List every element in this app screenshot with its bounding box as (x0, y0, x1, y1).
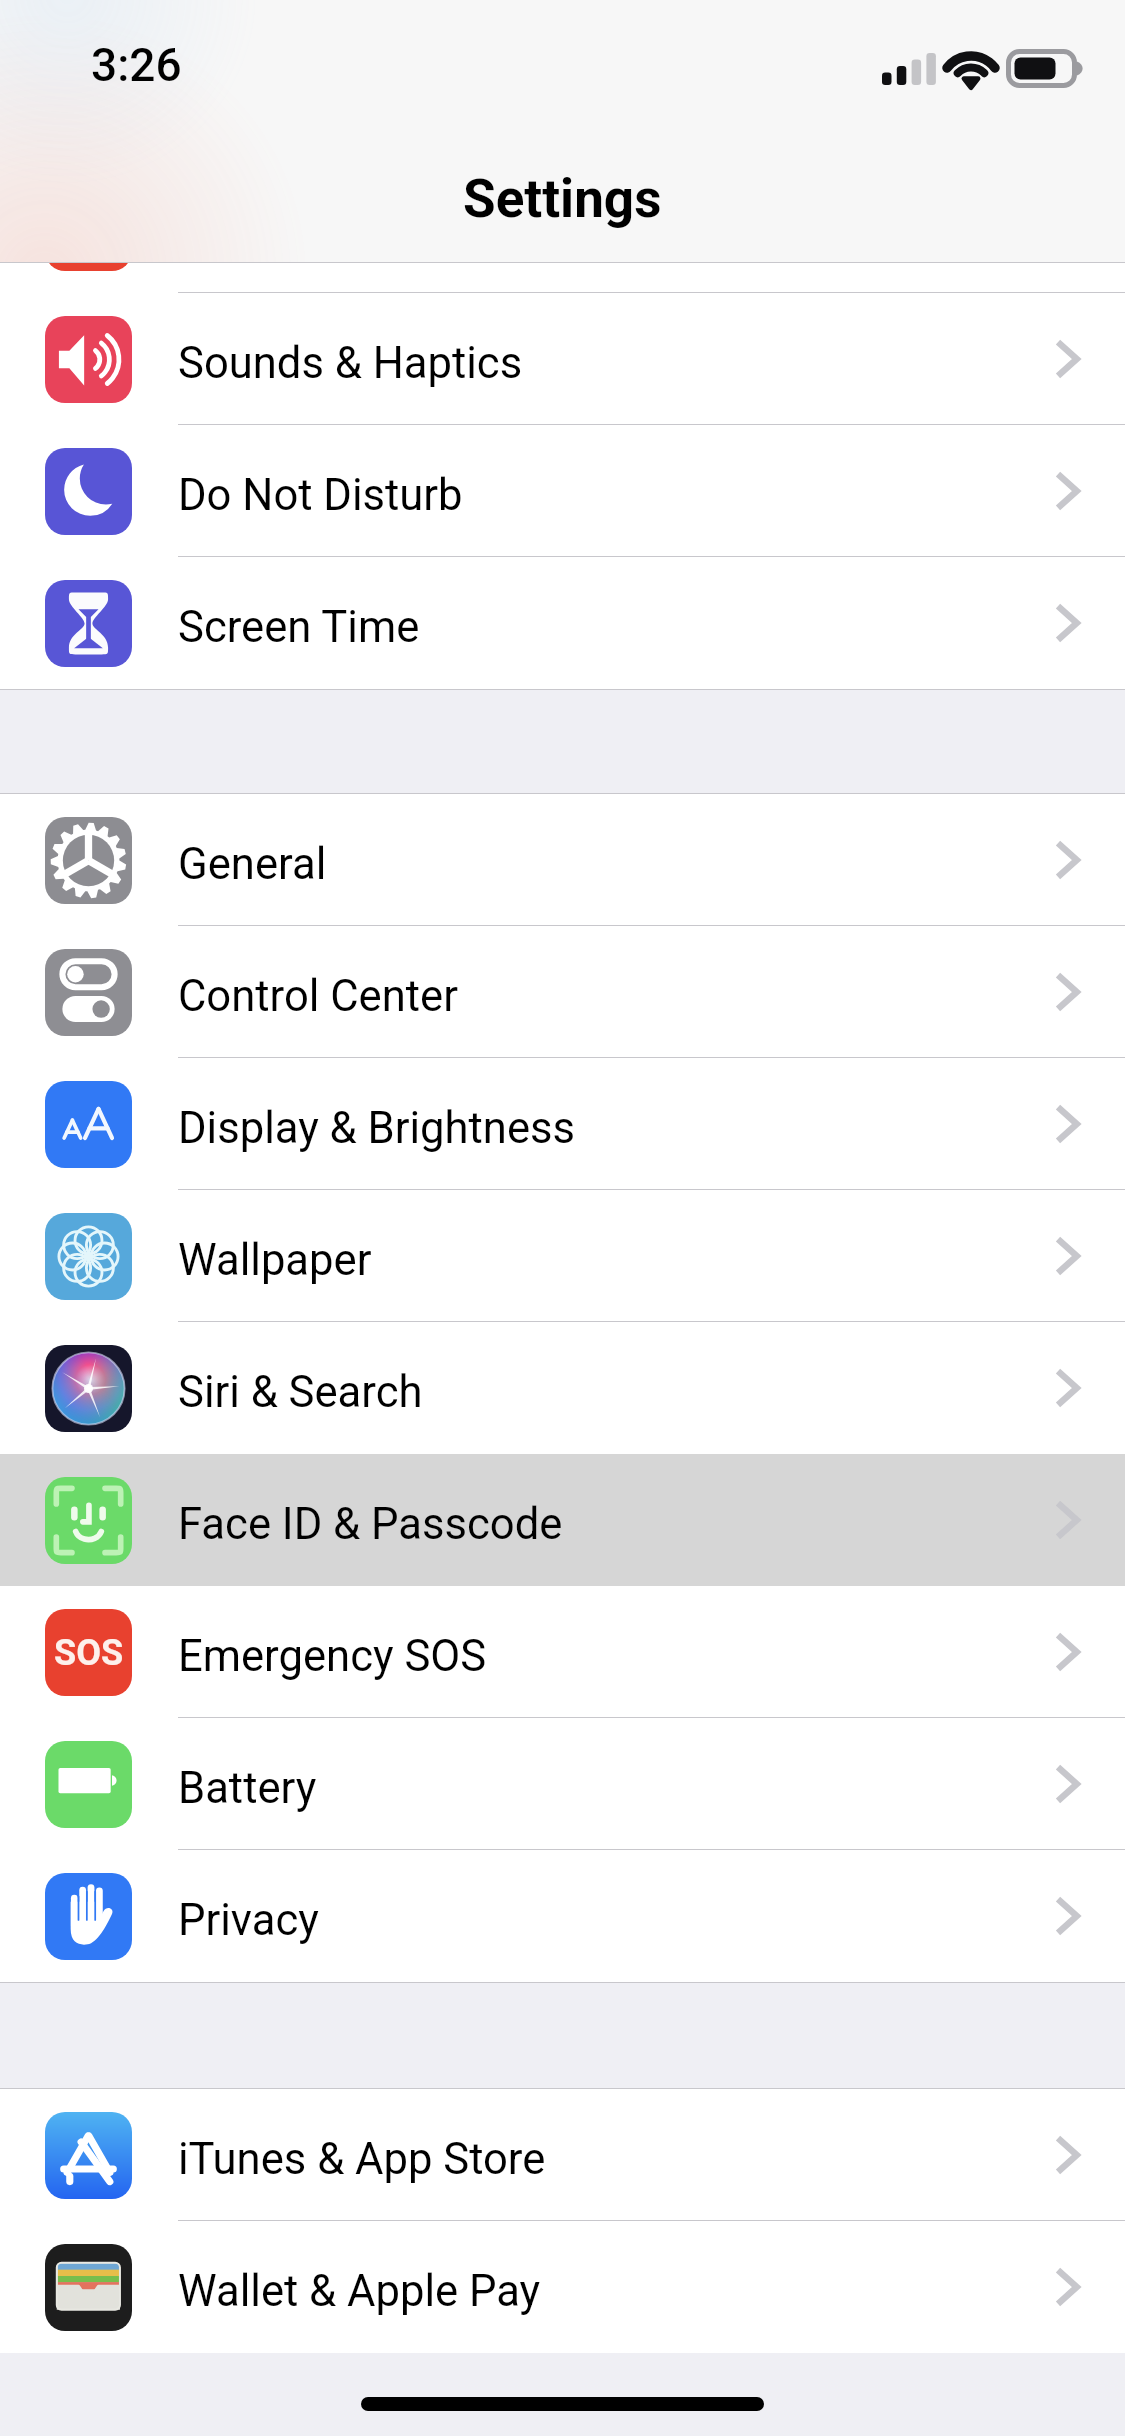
button[interactable]: Do Not Disturb (0, 425, 1125, 557)
button[interactable]: Display & Brightness (0, 1058, 1125, 1190)
staticText: Screen Time (178, 602, 420, 653)
staticText: Notifications (178, 206, 426, 257)
button[interactable]: Face ID & Passcode (0, 1454, 1125, 1586)
staticText: Control Center (178, 971, 458, 1022)
staticText: Emergency SOS (178, 1631, 487, 1682)
button[interactable]: General (0, 794, 1125, 926)
staticText: Display & Brightness (178, 1103, 576, 1154)
staticText: Settings (463, 168, 662, 230)
staticText: Sounds & Haptics (178, 338, 523, 389)
staticText: 3:26 (91, 38, 182, 92)
button[interactable]: Wallpaper (0, 1190, 1125, 1322)
staticText: Do Not Disturb (178, 470, 463, 521)
staticText: Wallet & Apple Pay (178, 2266, 541, 2317)
other: Cellular signal, Wi-Fi and battery statu… (880, 44, 1090, 92)
staticText: Face ID & Passcode (178, 1499, 563, 1550)
staticText: Siri & Search (178, 1367, 423, 1418)
button[interactable]: Wallet & Apple Pay (0, 2221, 1125, 2353)
button[interactable]: Privacy (0, 1850, 1125, 1982)
staticText: Wallpaper (178, 1235, 372, 1286)
staticText: iTunes & App Store (178, 2134, 546, 2185)
button[interactable]: Siri & Search (0, 1322, 1125, 1454)
staticText: General (178, 839, 327, 890)
button[interactable]: Control Center (0, 926, 1125, 1058)
staticText: Battery (178, 1763, 317, 1814)
button[interactable]: Screen Time (0, 557, 1125, 689)
button[interactable]: Sounds & Haptics (0, 293, 1125, 425)
button[interactable]: Notifications (0, 161, 1125, 293)
button[interactable]: iTunes & App Store (0, 2089, 1125, 2221)
button[interactable]: Battery (0, 1718, 1125, 1850)
button[interactable]: Emergency SOS (0, 1586, 1125, 1718)
staticText: SOS (54, 1632, 124, 1674)
staticText: Privacy (178, 1895, 319, 1946)
